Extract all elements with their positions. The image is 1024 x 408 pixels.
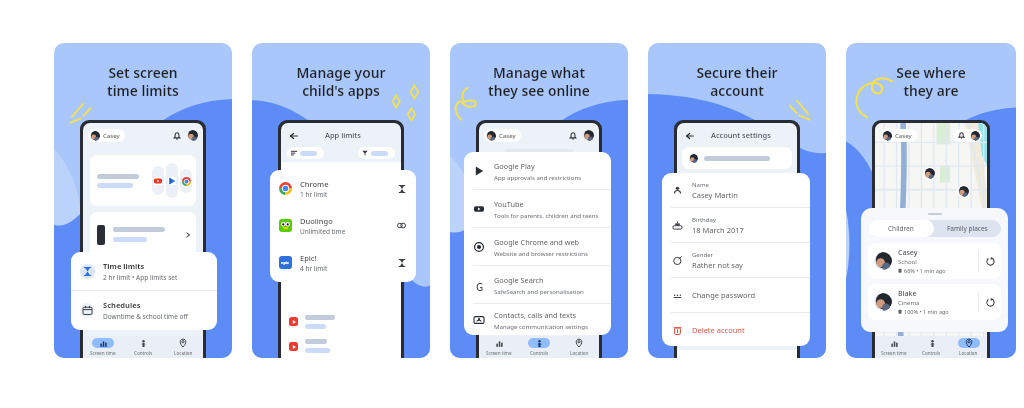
button[interactable]: Notifications xyxy=(957,131,966,140)
staticText: Set screen time limits xyxy=(54,63,232,100)
staticText: Unlimited time xyxy=(300,227,346,236)
staticText: Screen time xyxy=(881,350,907,356)
button[interactable]: Casey xyxy=(484,129,521,142)
button[interactable]: Controls xyxy=(519,336,559,358)
button[interactable]: Family places xyxy=(934,220,1001,237)
button[interactable]: Casey xyxy=(88,129,125,142)
staticText: Epic! xyxy=(300,253,317,263)
staticText: Downtime & school time off xyxy=(103,312,188,321)
staticText: Casey xyxy=(103,132,120,140)
button[interactable]: Account xyxy=(970,131,980,141)
staticText: App approvals and restrictions xyxy=(494,173,582,181)
button[interactable]: Notifications xyxy=(171,130,182,141)
button[interactable]: Screen time xyxy=(875,336,913,358)
button[interactable] xyxy=(287,147,324,159)
button[interactable]: Casey xyxy=(868,243,1001,279)
button[interactable]: Location xyxy=(559,336,599,358)
staticText: Manage what they see online xyxy=(450,63,628,100)
staticText: Manage your child's apps xyxy=(252,63,430,100)
staticText: See where they are xyxy=(846,63,1016,100)
staticText: 66% • 1 min ago xyxy=(904,267,946,274)
staticText: Rather not say xyxy=(692,260,743,270)
staticText: Contacts, calls and texts xyxy=(494,310,577,320)
button[interactable]: Screen time xyxy=(83,336,123,358)
staticText: 4 hr limit xyxy=(300,264,328,273)
staticText: Children xyxy=(888,224,914,233)
staticText: SafeSearch and personalisation xyxy=(494,287,584,295)
staticText: Change password xyxy=(692,290,756,300)
staticText: Name xyxy=(692,181,709,189)
staticText: Cinema xyxy=(898,299,920,307)
staticText: Google Search xyxy=(494,275,544,285)
staticText: 18 March 2017 xyxy=(692,225,744,235)
button[interactable]: Change password xyxy=(662,278,810,312)
staticText: Location xyxy=(174,350,193,356)
button[interactable] xyxy=(358,147,395,159)
button[interactable]: Children xyxy=(868,220,934,237)
staticText: Chrome xyxy=(300,179,329,189)
staticText: Birthday xyxy=(692,216,716,224)
button[interactable]: Gender xyxy=(662,243,810,277)
staticText: Controls xyxy=(530,350,549,356)
button[interactable]: Contacts, calls and texts xyxy=(464,304,611,335)
button[interactable]: Account xyxy=(187,130,198,141)
button[interactable] xyxy=(90,155,196,206)
button[interactable]: Casey xyxy=(880,129,917,142)
staticText: Duolingo xyxy=(300,216,333,226)
button[interactable]: epic xyxy=(270,244,416,281)
staticText: YouTube xyxy=(494,199,524,209)
button[interactable]: Controls xyxy=(913,336,950,358)
button[interactable]: G xyxy=(464,266,611,303)
staticText: Google Chrome and web xyxy=(494,237,580,247)
staticText: Screen time xyxy=(90,350,116,356)
button[interactable]: Duolingo xyxy=(270,207,416,244)
staticText: Casey xyxy=(898,248,918,258)
button[interactable]: Name xyxy=(662,173,810,207)
staticText: Schedules xyxy=(103,300,141,310)
button[interactable]: Blake xyxy=(868,284,1001,320)
staticText: epic xyxy=(281,260,290,265)
button[interactable]: Schedules xyxy=(71,291,217,329)
staticText: School xyxy=(898,258,917,266)
staticText: Controls xyxy=(922,350,941,356)
staticText: Secure their account xyxy=(648,63,826,100)
staticText: Manage communication settings xyxy=(494,322,588,330)
button[interactable]: Location xyxy=(163,336,203,358)
staticText: Family places xyxy=(947,224,988,233)
staticText: 100% • 1 min ago xyxy=(904,308,949,315)
button[interactable]: Google Chrome and web xyxy=(464,228,611,265)
staticText: Google Play xyxy=(494,161,535,171)
button[interactable]: YouTube xyxy=(464,190,611,227)
button[interactable]: Google Play xyxy=(464,152,611,189)
staticText: Location xyxy=(959,350,978,356)
button[interactable]: Refresh xyxy=(984,255,997,268)
staticText: 2 hr limit • App limits set xyxy=(103,273,178,282)
button[interactable]: Account xyxy=(583,130,594,141)
staticText: Casey xyxy=(499,132,516,140)
staticText: Controls xyxy=(134,350,153,356)
button[interactable]: Controls xyxy=(123,336,163,358)
staticText: Delete account xyxy=(692,325,745,335)
button[interactable]: Refresh xyxy=(984,296,997,309)
button[interactable]: Delete account xyxy=(662,313,810,346)
button[interactable]: Birthday xyxy=(662,208,810,242)
staticText: Casey xyxy=(895,132,912,140)
button[interactable]: Location xyxy=(950,336,987,358)
staticText: G xyxy=(476,280,484,291)
staticText: Tools for parents, children and teens xyxy=(494,211,599,219)
button[interactable]: Time limits xyxy=(71,252,217,290)
button[interactable]: Notifications xyxy=(567,130,578,141)
staticText: Casey Martin xyxy=(692,190,738,200)
staticText: Screen time xyxy=(486,350,512,356)
staticText: App limits xyxy=(325,130,361,140)
button[interactable]: Screen time xyxy=(479,336,519,358)
staticText: Website and browser restrictions xyxy=(494,249,589,257)
button[interactable]: Back xyxy=(684,130,695,141)
button[interactable]: Chrome xyxy=(270,170,416,207)
staticText: Account settings xyxy=(711,130,771,140)
button[interactable] xyxy=(90,212,196,257)
staticText: Time limits xyxy=(103,261,145,271)
staticText: Gender xyxy=(692,251,714,259)
staticText: Blake xyxy=(898,289,917,299)
button[interactable]: Back xyxy=(288,130,299,141)
